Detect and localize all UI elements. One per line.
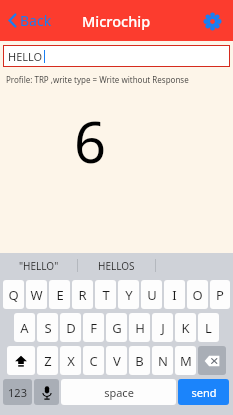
staticText: space [104, 385, 134, 400]
button[interactable]: V [106, 346, 127, 375]
button[interactable]: space [61, 379, 176, 405]
staticText: HELLO [8, 49, 43, 64]
button[interactable]: Settings [199, 8, 225, 34]
staticText: Z [44, 352, 52, 370]
staticText: W [30, 286, 43, 304]
staticText: E [56, 286, 64, 304]
button[interactable]: I [164, 280, 185, 309]
staticText: O [192, 286, 203, 304]
staticText: M [180, 352, 192, 370]
button[interactable]: Backspace [198, 346, 226, 375]
button[interactable]: send [178, 379, 229, 405]
button[interactable]: B [129, 346, 150, 375]
button[interactable]: P [210, 280, 230, 309]
button[interactable]: Z [37, 346, 58, 375]
staticText: 6 [74, 103, 107, 179]
staticText: V [113, 352, 121, 370]
button[interactable]: R [72, 280, 93, 309]
staticText: 123 [8, 385, 27, 400]
staticText: D [66, 319, 76, 337]
staticText: send [191, 385, 217, 400]
button[interactable]: T [95, 280, 116, 309]
staticText: K [181, 319, 190, 337]
staticText: Profile: TRP ,write type = Write without… [6, 74, 189, 85]
button[interactable]: N [152, 346, 173, 375]
button[interactable]: Shift [7, 346, 35, 375]
button[interactable]: F [83, 313, 104, 342]
button[interactable]: A [14, 313, 35, 342]
staticText: Microchip [82, 11, 151, 31]
staticText: N [158, 352, 168, 370]
staticText: C [89, 352, 98, 370]
button[interactable]: O [187, 280, 208, 309]
button[interactable]: C [83, 346, 104, 375]
staticText: L [205, 319, 212, 337]
staticText: F [90, 319, 97, 337]
button[interactable]: J [152, 313, 173, 342]
staticText: HELLOS [98, 259, 135, 273]
staticText: U [147, 286, 157, 304]
staticText: X [67, 352, 75, 370]
button[interactable]: Dictate [34, 379, 59, 405]
staticText: R [78, 286, 87, 304]
button[interactable]: H [129, 313, 150, 342]
staticText: Y [125, 286, 133, 304]
button[interactable]: U [141, 280, 162, 309]
button[interactable]: Back [5, 7, 55, 34]
button[interactable]: M [175, 346, 196, 375]
button[interactable]: Q [3, 280, 24, 309]
staticText: H [135, 319, 145, 337]
staticText: S [44, 319, 52, 337]
staticText: Back [20, 11, 52, 30]
button[interactable]: D [60, 313, 81, 342]
staticText: "HELLO" [19, 259, 59, 273]
button[interactable]: L [198, 313, 219, 342]
staticText: A [20, 319, 29, 337]
button[interactable]: G [106, 313, 127, 342]
button[interactable]: HELLO [3, 45, 230, 67]
button[interactable]: "HELLO" [0, 253, 77, 278]
button[interactable]: Y [118, 280, 139, 309]
staticText: G [112, 319, 122, 337]
staticText: J [161, 319, 165, 337]
button[interactable]: E [49, 280, 70, 309]
staticText: I [172, 286, 177, 304]
button[interactable]: K [175, 313, 196, 342]
button[interactable]: W [26, 280, 47, 309]
staticText: B [135, 352, 144, 370]
button[interactable]: X [60, 346, 81, 375]
button[interactable]: 123 [3, 379, 32, 405]
button[interactable]: S [37, 313, 58, 342]
staticText: T [102, 286, 110, 304]
button[interactable]: HELLOS [78, 253, 155, 278]
staticText: P [216, 286, 224, 304]
staticText: Q [8, 286, 19, 304]
